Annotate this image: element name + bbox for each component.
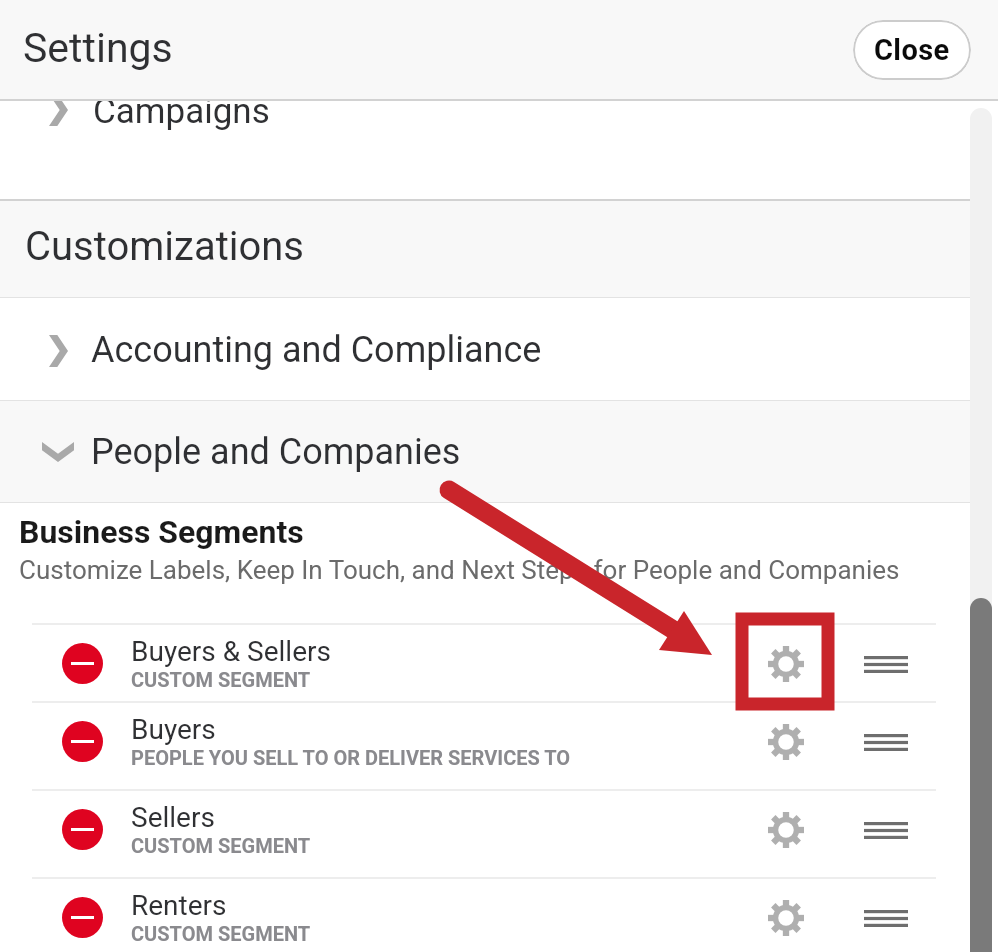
button[interactable]: Remove segment bbox=[62, 721, 103, 762]
staticText: Renters bbox=[131, 889, 227, 922]
button[interactable] bbox=[0, 879, 970, 952]
button[interactable] bbox=[0, 703, 970, 789]
button[interactable]: Segment settings bbox=[760, 716, 812, 768]
staticText: People and Companies bbox=[91, 431, 461, 473]
button[interactable]: Reorder bbox=[856, 716, 916, 768]
button[interactable]: Segment settings bbox=[760, 638, 812, 690]
button[interactable] bbox=[0, 401, 970, 502]
staticText: CUSTOM SEGMENT bbox=[131, 668, 311, 691]
button[interactable] bbox=[0, 201, 970, 297]
staticText: Close bbox=[874, 33, 950, 67]
button[interactable]: Remove segment bbox=[62, 809, 103, 850]
staticText: CUSTOM SEGMENT bbox=[131, 834, 311, 857]
staticText: Buyers & Sellers bbox=[131, 635, 331, 668]
button[interactable] bbox=[0, 625, 970, 701]
button[interactable] bbox=[0, 101, 970, 199]
button[interactable]: Reorder bbox=[856, 804, 916, 856]
staticText: CUSTOM SEGMENT bbox=[131, 922, 311, 945]
button[interactable]: Close bbox=[853, 20, 971, 80]
staticText: Sellers bbox=[131, 801, 215, 834]
staticText: PEOPLE YOU SELL TO OR DELIVER SERVICES T… bbox=[131, 746, 571, 769]
staticText: Accounting and Compliance bbox=[91, 329, 542, 371]
staticText: Customize Labels, Keep In Touch, and Nex… bbox=[19, 555, 900, 585]
staticText: Customizations bbox=[25, 223, 305, 270]
button[interactable]: Segment settings bbox=[760, 892, 812, 944]
staticText: Settings bbox=[23, 24, 173, 72]
staticText: Business Segments bbox=[19, 513, 304, 551]
button[interactable] bbox=[0, 298, 970, 400]
button[interactable]: Reorder bbox=[856, 638, 916, 690]
button[interactable]: Remove segment bbox=[62, 897, 103, 938]
button[interactable] bbox=[0, 791, 970, 877]
button[interactable]: Reorder bbox=[856, 892, 916, 944]
staticText: Campaigns bbox=[93, 101, 270, 132]
button[interactable]: Segment settings bbox=[760, 804, 812, 856]
button[interactable]: Remove segment bbox=[62, 643, 103, 684]
staticText: Buyers bbox=[131, 713, 216, 746]
